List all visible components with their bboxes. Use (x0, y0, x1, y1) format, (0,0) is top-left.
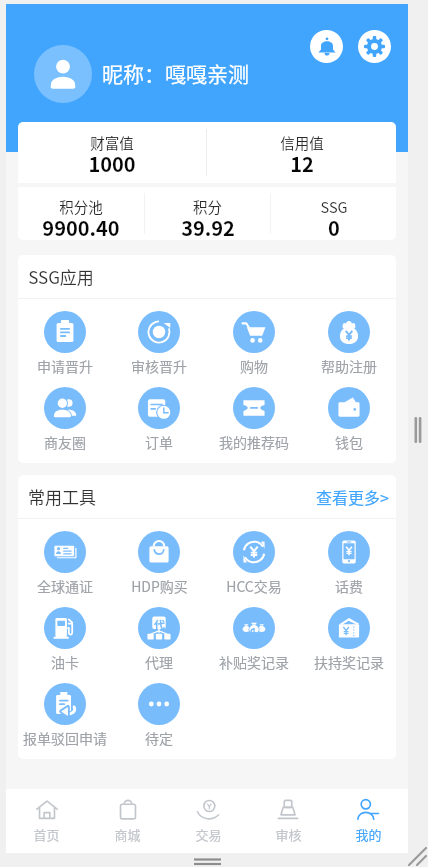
staticText: 申请晋升 (37, 356, 93, 376)
staticText: 钱包 (335, 432, 363, 452)
button[interactable]: 交易 (168, 789, 248, 853)
button[interactable]: 我的 (328, 789, 408, 853)
button[interactable]: 商友圈 (18, 387, 112, 463)
staticText: 购物 (240, 356, 268, 376)
staticText: 交易 (195, 825, 222, 844)
button[interactable]: SSG (271, 187, 396, 240)
staticText: 全球通证 (37, 576, 93, 596)
button[interactable]: 审核晋升 (112, 311, 206, 387)
button[interactable]: 我的推荐码 (206, 387, 301, 463)
staticText: 39.92 (181, 213, 235, 236)
staticText: 油卡 (51, 652, 79, 672)
button[interactable]: 财富值 (18, 122, 206, 183)
staticText: 昵称：嘎嘎亲测 (102, 58, 249, 88)
button[interactable]: 待定 (112, 683, 206, 759)
button[interactable]: 油卡 (18, 607, 112, 683)
staticText: 积分 (193, 196, 222, 217)
button[interactable]: 帮助注册 (301, 311, 396, 387)
button[interactable]: HCC交易 (206, 531, 301, 607)
button[interactable]: 钱包 (301, 387, 396, 463)
button[interactable]: 代 (112, 607, 206, 683)
staticText: 0 (328, 213, 340, 236)
staticText: 9900.40 (42, 213, 120, 236)
button[interactable]: 积分池 (18, 187, 144, 240)
staticText: 代理 (145, 652, 173, 672)
staticText: 报单驳回申请 (23, 728, 107, 748)
button[interactable]: 首页 (6, 789, 87, 853)
button[interactable]: 积分 (145, 187, 270, 240)
button[interactable]: 查看更多> (316, 485, 389, 508)
button[interactable]: 审核 (248, 789, 328, 853)
button[interactable]: 商城 (87, 789, 168, 853)
staticText: SSG (320, 196, 348, 217)
staticText: 查看更多> (316, 485, 389, 508)
button[interactable]: 信用值 (207, 122, 396, 183)
staticText: 代 (154, 616, 165, 632)
staticText: 审核 (275, 825, 302, 844)
staticText: 信用值 (280, 132, 324, 153)
staticText: 话费 (335, 576, 363, 596)
staticText: 1000 (88, 149, 136, 178)
button[interactable]: 扶持奖记录 (301, 607, 396, 683)
staticText: 补贴奖记录 (219, 652, 289, 672)
staticText: 首页 (33, 825, 60, 844)
staticText: 我的 (355, 825, 382, 844)
button[interactable]: 订单 (112, 387, 206, 463)
button[interactable]: Settings (358, 30, 391, 63)
button[interactable]: 购物 (206, 311, 301, 387)
button[interactable]: 申请晋升 (18, 311, 112, 387)
staticText: 帮助注册 (321, 356, 377, 376)
button[interactable]: 报单驳回申请 (18, 683, 112, 759)
button[interactable]: Notifications (310, 30, 343, 63)
staticText: 我的推荐码 (219, 432, 289, 452)
staticText: 扶持奖记录 (314, 652, 384, 672)
staticText: 订单 (145, 432, 173, 452)
button[interactable]: HDP购买 (112, 531, 206, 607)
staticText: 12 (290, 149, 314, 178)
button[interactable]: 话费 (301, 531, 396, 607)
staticText: 积分池 (59, 196, 103, 217)
staticText: HDP购买 (131, 576, 188, 596)
staticText: 审核晋升 (131, 356, 187, 376)
staticText: 待定 (145, 728, 173, 748)
staticText: 商友圈 (44, 432, 86, 452)
button[interactable]: 全球通证 (18, 531, 112, 607)
staticText: SSG应用 (28, 264, 94, 289)
button[interactable]: 补贴奖记录 (206, 607, 301, 683)
staticText: HCC交易 (226, 576, 282, 596)
staticText: 财富值 (90, 132, 134, 153)
staticText: 商城 (114, 825, 141, 844)
staticText: 常用工具 (28, 484, 96, 509)
